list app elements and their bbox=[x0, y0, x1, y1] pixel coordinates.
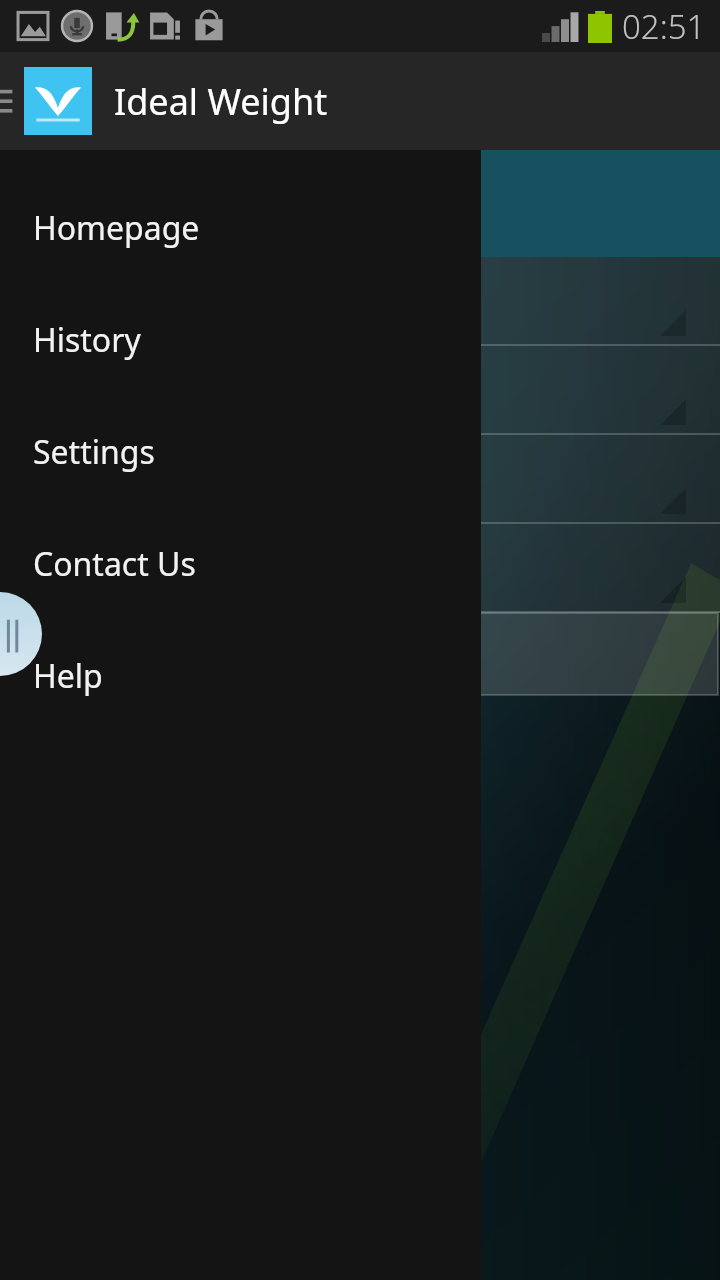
staticText: Help bbox=[33, 654, 103, 698]
staticText: 02:51 bbox=[622, 4, 706, 49]
button[interactable] bbox=[2, 613, 718, 695]
button[interactable]: Help bbox=[0, 620, 481, 732]
button[interactable]: IDEAL WEIGHT bbox=[0, 150, 720, 257]
button[interactable]: Open navigation drawer bbox=[0, 81, 26, 121]
button[interactable]: Height in centimeter bbox=[0, 346, 720, 435]
button[interactable]: History bbox=[0, 284, 481, 396]
staticText: History bbox=[33, 318, 141, 362]
button[interactable]: Drag handle bbox=[0, 592, 42, 676]
button[interactable]: Contact Us bbox=[0, 508, 481, 620]
button[interactable]: Homepage bbox=[0, 172, 481, 284]
button[interactable]: Weight in grams bbox=[0, 257, 720, 346]
staticText: Settings bbox=[33, 430, 155, 474]
staticText: CALCULATOR FORM bbox=[26, 200, 341, 246]
staticText: Contact Us bbox=[33, 542, 196, 586]
staticText: Homepage bbox=[33, 206, 200, 250]
staticText: Ideal Weight bbox=[114, 77, 328, 126]
button[interactable] bbox=[0, 524, 720, 613]
button[interactable]: Settings bbox=[0, 396, 481, 508]
button[interactable] bbox=[0, 435, 720, 524]
